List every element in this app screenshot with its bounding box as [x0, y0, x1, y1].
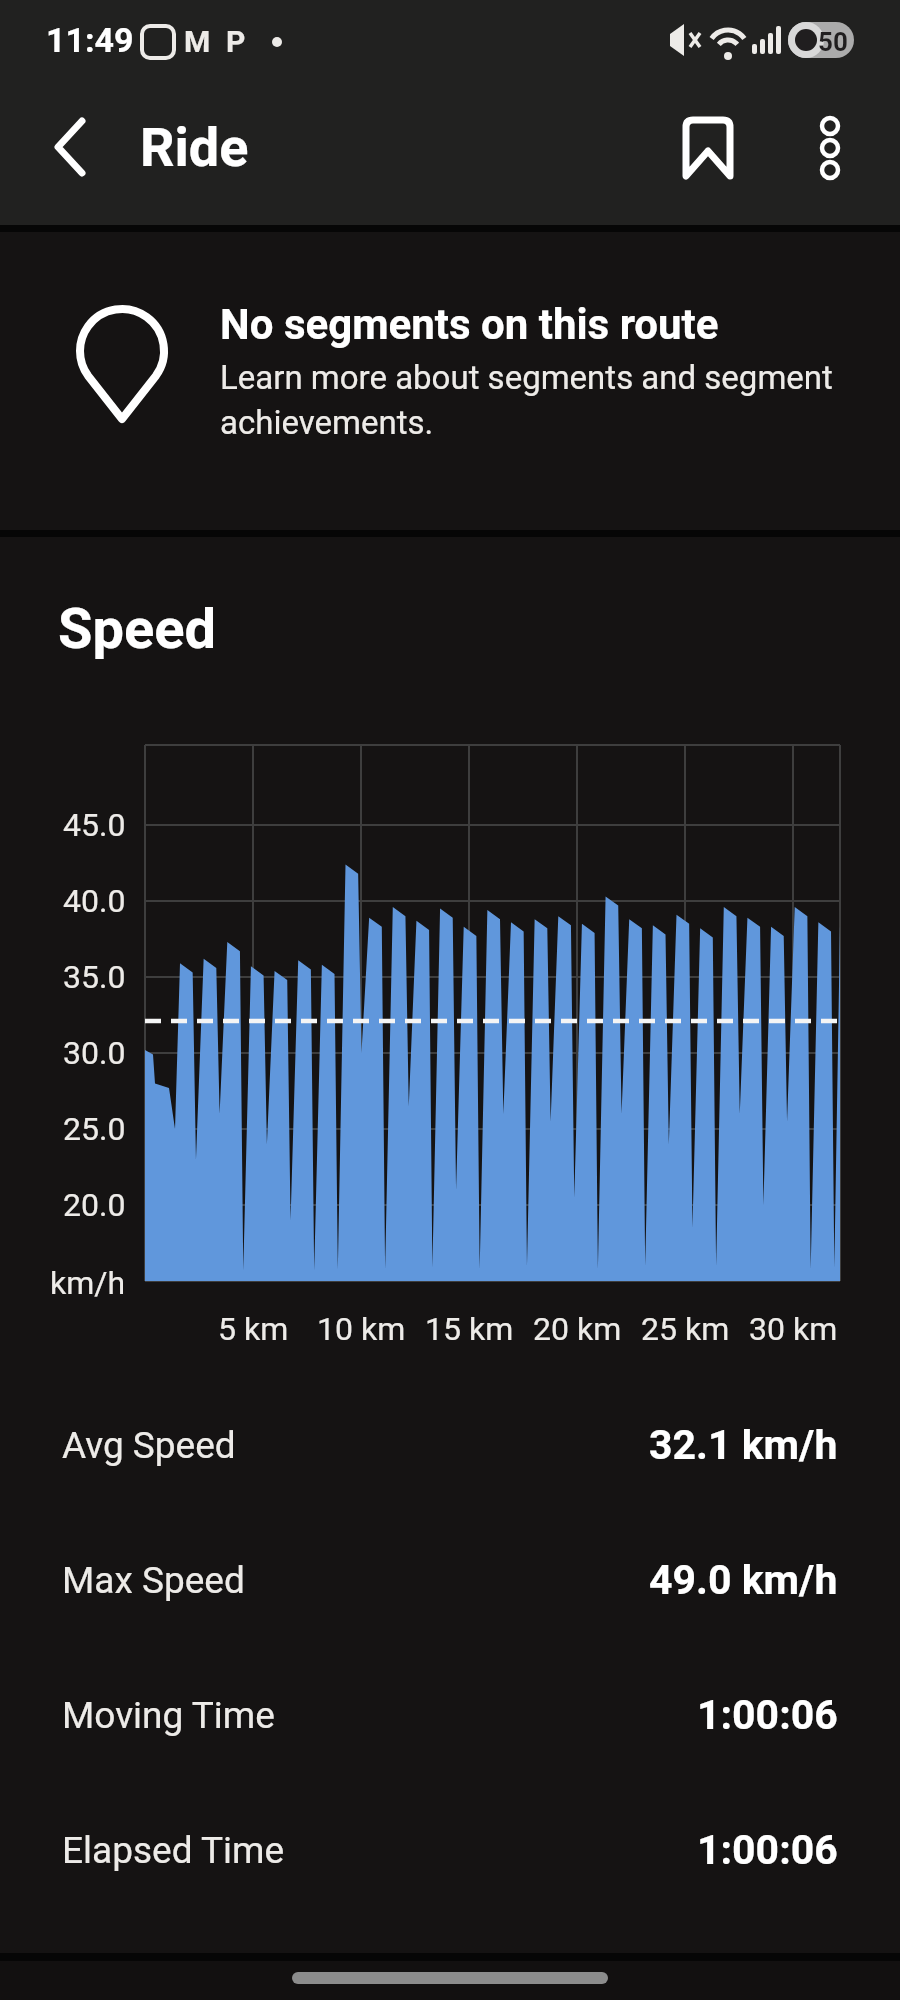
staticText: 49.0 km/h: [649, 1556, 838, 1604]
staticText: 5 km: [218, 1310, 289, 1348]
staticText: 35.0: [63, 958, 126, 996]
button[interactable]: [30, 110, 110, 190]
staticText: km/h: [50, 1264, 126, 1302]
staticText: 20.0: [63, 1186, 126, 1224]
staticText: Max Speed: [62, 1559, 245, 1602]
staticText: 1:00:06: [697, 1691, 838, 1739]
staticText: 1:00:06: [697, 1826, 838, 1874]
staticText: Avg Speed: [62, 1424, 236, 1467]
staticText: P: [226, 24, 246, 59]
staticText: Moving Time: [62, 1694, 275, 1737]
staticText: 32.1 km/h: [649, 1421, 838, 1469]
staticText: 15 km: [425, 1310, 514, 1348]
staticText: 11:49: [46, 20, 134, 60]
staticText: M: [184, 24, 211, 59]
button[interactable]: [666, 105, 756, 195]
staticText: No segments on this route: [220, 300, 719, 349]
button[interactable]: [0, 232, 900, 530]
staticText: 10 km: [317, 1310, 406, 1348]
staticText: 25 km: [641, 1310, 730, 1348]
staticText: Learn more about segments and segment ac…: [220, 358, 833, 442]
staticText: 40.0: [63, 882, 126, 920]
staticText: Speed: [58, 596, 217, 662]
staticText: 25.0: [63, 1110, 126, 1148]
staticText: Elapsed Time: [62, 1829, 285, 1872]
staticText: Ride: [140, 116, 249, 179]
button[interactable]: [795, 105, 865, 195]
staticText: 30 km: [749, 1310, 838, 1348]
staticText: 20 km: [533, 1310, 622, 1348]
staticText: 45.0: [63, 806, 126, 844]
staticText: 50: [818, 27, 848, 57]
staticText: 30.0: [63, 1034, 126, 1072]
